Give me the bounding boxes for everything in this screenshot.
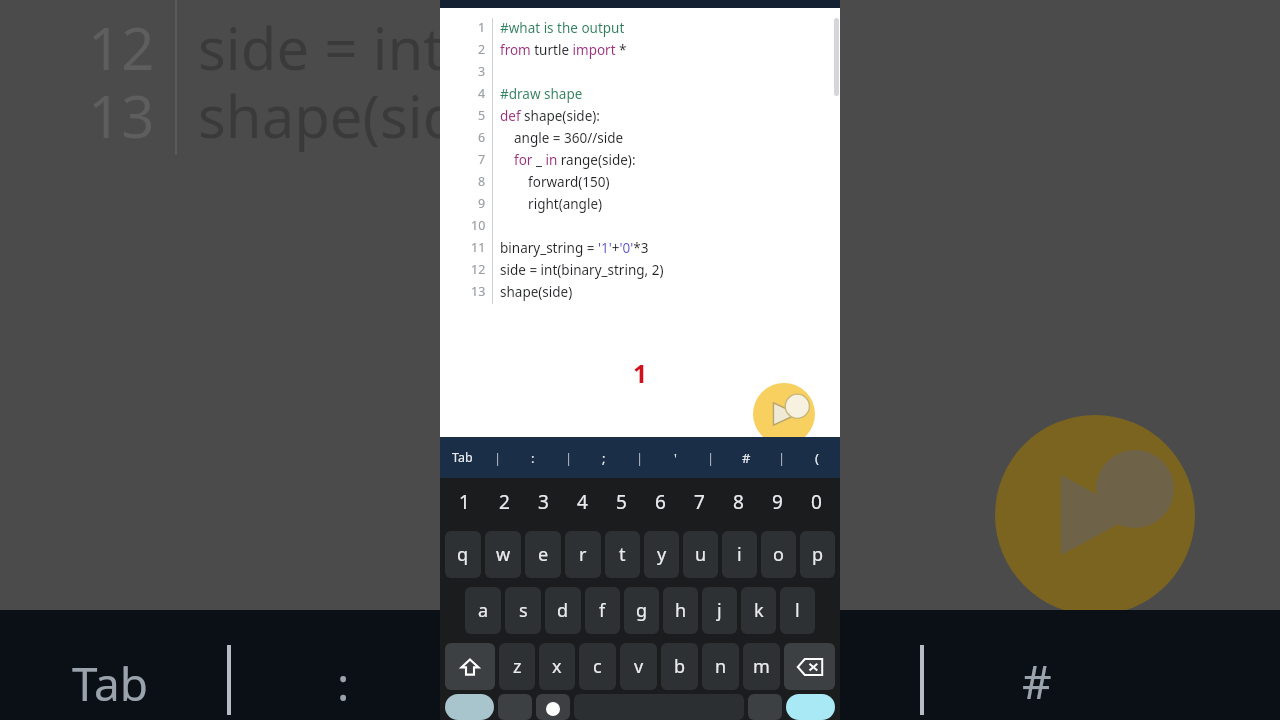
button[interactable]: ;	[581, 449, 627, 467]
button[interactable]: n	[702, 643, 739, 690]
button[interactable]: |	[556, 449, 581, 467]
button[interactable]: w	[485, 531, 521, 578]
staticText: 3	[538, 489, 549, 515]
button[interactable]: s	[505, 587, 541, 634]
button[interactable]: 7	[680, 489, 719, 515]
staticText: 5	[616, 489, 627, 515]
button[interactable]: 0	[797, 489, 836, 515]
staticText: v	[634, 654, 644, 679]
button[interactable]: k	[741, 587, 776, 634]
staticText: 2	[499, 489, 510, 515]
staticText: z	[513, 654, 522, 679]
staticText: Tab	[72, 652, 148, 715]
button[interactable]: |	[698, 449, 723, 467]
staticText: #what is the output	[500, 19, 625, 37]
button[interactable]: |	[485, 449, 510, 467]
button[interactable]: Period	[748, 694, 782, 720]
button[interactable]: '	[652, 449, 698, 467]
button[interactable]: z	[499, 643, 535, 690]
staticText: |	[565, 449, 573, 467]
button[interactable]: q	[445, 531, 481, 578]
button[interactable]: Backspace	[784, 643, 835, 690]
button[interactable]: Comma	[498, 694, 532, 720]
staticText: b	[674, 654, 686, 679]
button[interactable]: o	[761, 531, 796, 578]
button[interactable]: u	[683, 531, 718, 578]
staticText: j	[717, 598, 722, 623]
staticText: shape(side)	[500, 283, 573, 301]
staticText: 1	[633, 356, 648, 390]
button[interactable]: x	[539, 643, 575, 690]
staticText: r	[579, 542, 587, 567]
staticText: |	[707, 449, 715, 467]
button[interactable]: f	[585, 587, 620, 634]
staticText: right(angle)	[500, 195, 603, 213]
button[interactable]: 5	[602, 489, 641, 515]
button[interactable]: 1	[444, 489, 484, 515]
button[interactable]: 2	[484, 489, 524, 515]
staticText: 1	[478, 19, 486, 36]
button[interactable]: Shift	[445, 643, 495, 690]
button[interactable]: Emoji	[536, 694, 570, 720]
button[interactable]: e	[525, 531, 561, 578]
staticText: 5	[478, 107, 486, 124]
staticText: 9	[478, 195, 486, 212]
staticText: 8	[478, 173, 486, 190]
button[interactable]: :	[510, 449, 556, 467]
staticText: 2	[478, 41, 486, 58]
button[interactable]: j	[702, 587, 737, 634]
staticText: s	[519, 598, 528, 623]
button[interactable]: d	[545, 587, 581, 634]
button[interactable]: y	[644, 531, 679, 578]
button[interactable]: #	[723, 449, 769, 467]
button[interactable]: Enter	[786, 694, 835, 720]
button[interactable]: l	[780, 587, 815, 634]
staticText: a	[478, 598, 489, 623]
button[interactable]: h	[663, 587, 698, 634]
button[interactable]: Symbols	[445, 694, 494, 720]
button[interactable]: b	[661, 643, 698, 690]
staticText: 4	[577, 489, 588, 515]
button[interactable]: 3	[524, 489, 563, 515]
staticText: x	[552, 654, 562, 679]
staticText: c	[593, 654, 602, 679]
staticText: g	[636, 598, 648, 623]
staticText: Tab	[452, 449, 473, 466]
staticText: #draw shape	[500, 85, 583, 103]
staticText: #	[742, 449, 751, 467]
staticText: 7	[478, 151, 486, 168]
staticText: 4	[478, 85, 486, 102]
button[interactable]: Play	[753, 383, 815, 445]
button[interactable]: p	[800, 531, 835, 578]
staticText: m	[753, 654, 770, 679]
button[interactable]: i	[722, 531, 757, 578]
button[interactable]: v	[620, 643, 657, 690]
staticText: 8	[733, 489, 744, 515]
staticText: angle = 360//side	[500, 129, 624, 147]
button[interactable]: c	[579, 643, 616, 690]
staticText: |	[778, 449, 786, 467]
button[interactable]: |	[627, 449, 652, 467]
button[interactable]: 9	[758, 489, 797, 515]
staticText: 12	[471, 261, 486, 278]
button[interactable]: (	[794, 449, 840, 467]
staticText: :	[531, 449, 535, 467]
staticText: side = int(binary_string, 2)	[500, 261, 664, 279]
staticText: p	[812, 542, 824, 567]
button[interactable]: Tab	[440, 449, 485, 466]
button[interactable]: a	[465, 587, 501, 634]
button[interactable]: r	[565, 531, 601, 578]
button[interactable]: g	[624, 587, 659, 634]
button[interactable]: 8	[719, 489, 758, 515]
button[interactable]: 4	[563, 489, 602, 515]
staticText: '	[674, 449, 677, 467]
staticText: def shape(side):	[500, 107, 600, 125]
button[interactable]: |	[769, 449, 794, 467]
button[interactable]: t	[605, 531, 640, 578]
staticText: w	[496, 542, 511, 567]
button[interactable]: 6	[641, 489, 680, 515]
staticText: n	[715, 654, 727, 679]
staticText: |	[636, 449, 644, 467]
button[interactable]: m	[743, 643, 780, 690]
